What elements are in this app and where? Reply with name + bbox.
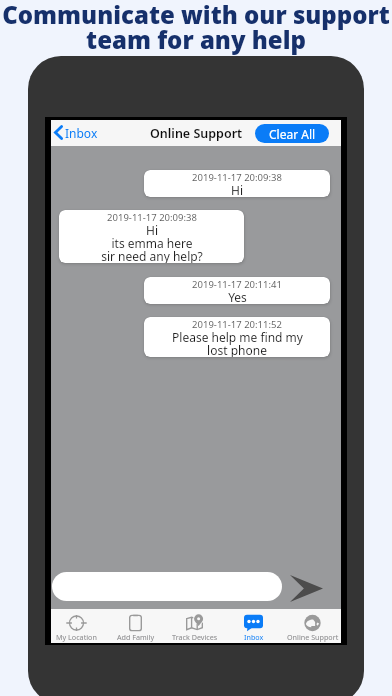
button[interactable]: Track Devices (165, 609, 224, 643)
staticText: 2019-11-17 20:09:38 (107, 211, 197, 224)
button[interactable]: Send (290, 575, 323, 602)
staticText: Please help me find my (172, 329, 303, 345)
button[interactable]: Online Support (283, 609, 342, 643)
staticText: Add Family (117, 632, 155, 642)
staticText: its emma here (111, 235, 193, 251)
staticText: 2019-11-17 20:11:41 (192, 278, 282, 291)
staticText: My Location (56, 632, 97, 642)
staticText: lost phone (207, 342, 267, 357)
button[interactable]: 2019-11-17 20:11:41 (144, 277, 330, 304)
button[interactable] (52, 572, 282, 601)
button[interactable]: 2019-11-17 20:09:38 (144, 170, 330, 197)
button[interactable]: 2019-11-17 20:09:38 (59, 210, 244, 263)
staticText: Clear All (269, 126, 316, 142)
staticText: Online Support (287, 632, 339, 642)
button[interactable]: Add Family (106, 609, 165, 643)
button[interactable]: Clear All (255, 124, 329, 143)
staticText: Online Support (150, 125, 243, 142)
staticText: 2019-11-17 20:11:52 (192, 318, 282, 331)
staticText: Communicate with our support team for an… (0, 0, 392, 56)
button[interactable]: Inbox (224, 609, 283, 643)
staticText: Yes (228, 289, 247, 304)
staticText: Inbox (65, 125, 98, 141)
staticText: Inbox (244, 632, 264, 642)
button[interactable]: Inbox (51, 125, 104, 141)
staticText: Hi (231, 182, 243, 197)
staticText: Track Devices (172, 632, 218, 642)
staticText: Hi (146, 222, 158, 238)
staticText: sir need any help? (101, 248, 203, 263)
button[interactable]: 2019-11-17 20:11:52 (144, 317, 330, 357)
button[interactable]: My Location (47, 609, 106, 643)
staticText: 2019-11-17 20:09:38 (192, 171, 282, 184)
